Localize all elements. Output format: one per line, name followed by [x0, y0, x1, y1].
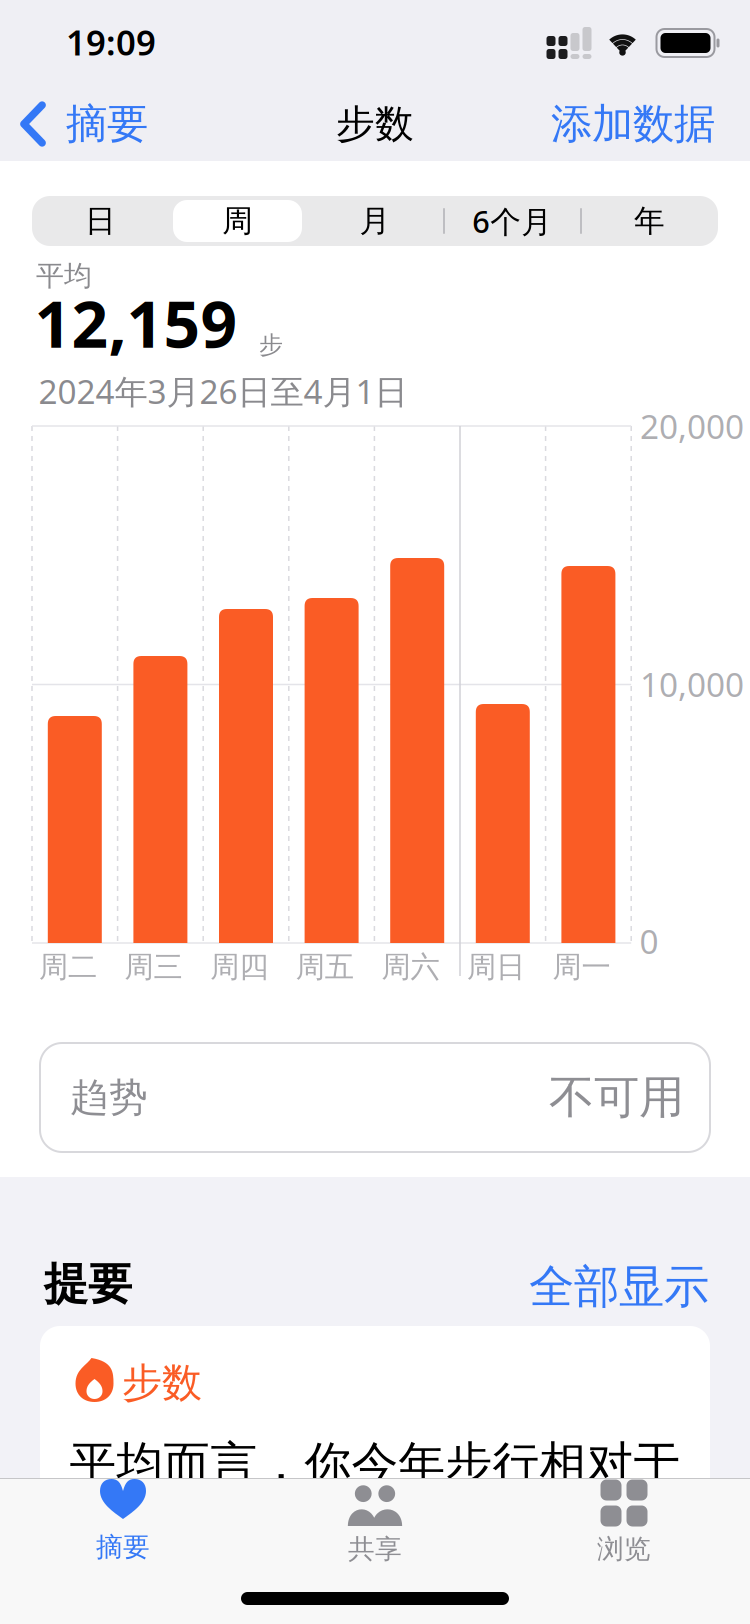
staticText: 周二: [39, 949, 97, 985]
staticText: 6个月: [472, 201, 552, 241]
staticText: 周四: [210, 949, 268, 985]
button[interactable]: 6个月: [444, 196, 581, 246]
staticText: 周三: [125, 949, 183, 985]
button[interactable]: 周: [169, 196, 306, 246]
staticText: 平均而言，你今年步行相对于: [69, 1435, 680, 1493]
button[interactable]: 摘要: [20, 99, 148, 149]
button[interactable]: 趋势: [40, 1043, 710, 1152]
staticText: 0: [639, 919, 658, 963]
button[interactable]: 摘要: [48, 1478, 198, 1568]
staticText: 步: [259, 330, 283, 360]
button[interactable]: 月: [306, 196, 444, 246]
staticText: 平均: [36, 259, 92, 293]
staticText: 周日: [467, 949, 525, 985]
staticText: 19:09: [66, 19, 156, 65]
staticText: 添加数据: [551, 99, 715, 149]
staticText: 步数: [122, 1358, 202, 1407]
button[interactable]: 全部显示: [529, 1259, 709, 1315]
staticText: 提要: [44, 1257, 132, 1311]
staticText: 共享: [348, 1533, 402, 1565]
button[interactable]: 步数: [40, 1326, 710, 1526]
staticText: 10,000: [640, 662, 744, 706]
staticText: 周一: [553, 949, 611, 985]
staticText: 周五: [296, 949, 354, 985]
staticText: 20,000: [640, 404, 744, 448]
button[interactable]: 添加数据: [551, 99, 715, 149]
staticText: 浏览: [597, 1533, 651, 1565]
button[interactable]: 日: [32, 196, 169, 246]
button[interactable]: 浏览: [549, 1478, 699, 1568]
staticText: 步数: [336, 100, 414, 148]
staticText: 年: [634, 202, 665, 240]
staticText: 周六: [381, 949, 439, 985]
button[interactable]: 共享: [300, 1478, 450, 1568]
staticText: 12,159: [34, 280, 237, 365]
staticText: 全部显示: [529, 1259, 709, 1315]
staticText: 周: [222, 202, 253, 240]
staticText: 月: [359, 202, 390, 240]
staticText: 不可用: [549, 1070, 684, 1125]
staticText: 趋势: [70, 1074, 148, 1121]
staticText: 2024年3月26日至4月1日: [38, 369, 407, 413]
staticText: 摘要: [66, 99, 148, 149]
staticText: 摘要: [96, 1531, 150, 1563]
button[interactable]: 年: [581, 196, 718, 246]
staticText: 日: [85, 202, 116, 240]
